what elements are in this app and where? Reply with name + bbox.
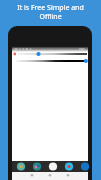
staticText: It is Free Simple and Offline	[6, 3, 95, 21]
